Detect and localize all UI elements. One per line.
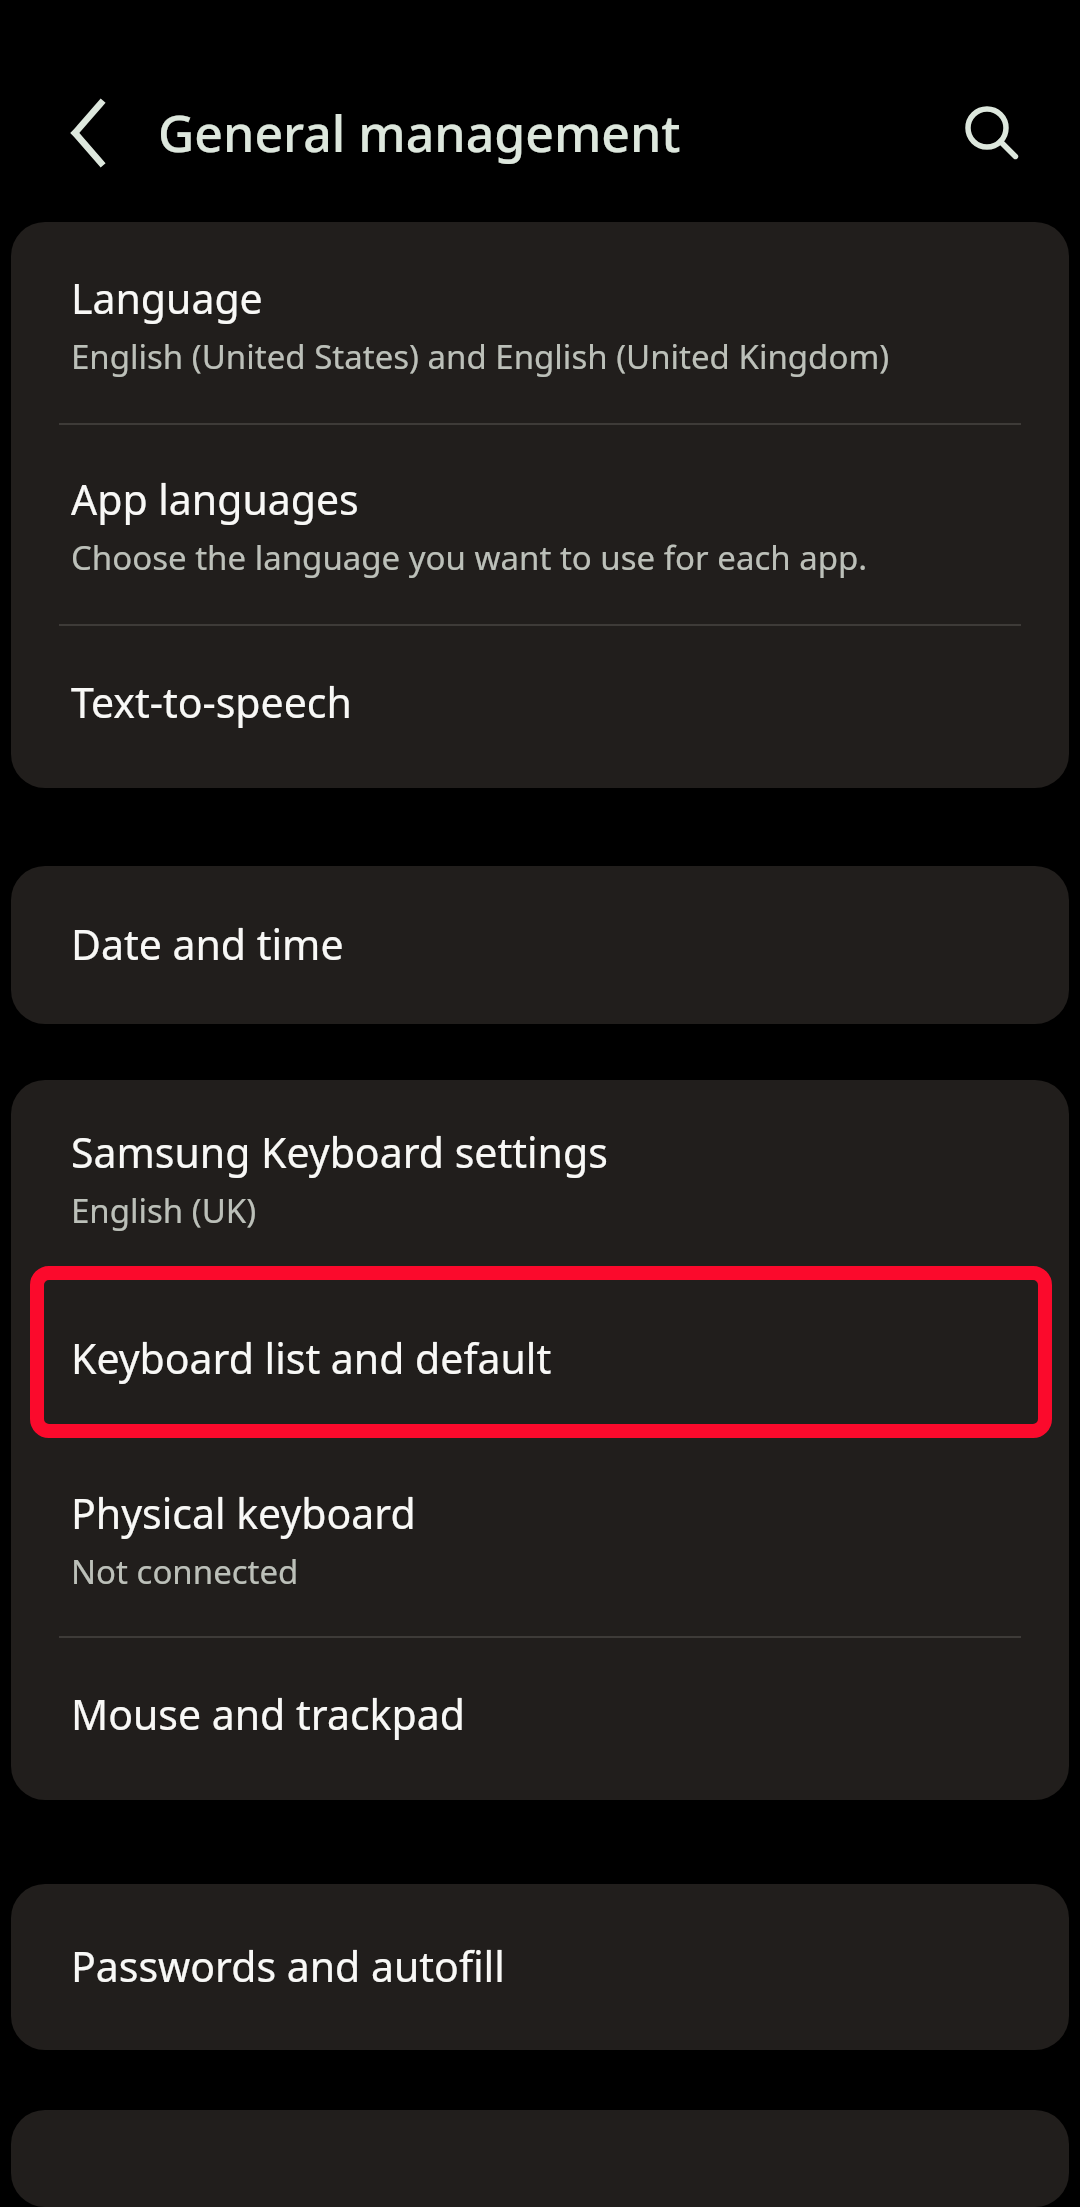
button[interactable]: Samsung Keyboard settings <box>11 1080 1069 1273</box>
button[interactable]: App languages <box>11 425 1069 624</box>
staticText: Date and time <box>71 916 344 972</box>
button[interactable]: Keyboard list and default <box>11 1273 1069 1443</box>
button[interactable]: Physical keyboard <box>11 1443 1069 1636</box>
staticText: Passwords and autofill <box>71 1938 505 1994</box>
staticText: Mouse and trackpad <box>71 1686 465 1742</box>
button[interactable]: Passwords and autofill <box>11 1884 1069 2050</box>
button[interactable]: Language <box>11 222 1069 423</box>
button[interactable]: Text-to-speech <box>11 626 1069 788</box>
staticText: English (UK) <box>71 1188 257 1233</box>
staticText: Samsung Keyboard settings <box>71 1124 608 1180</box>
button[interactable]: Back <box>40 85 136 181</box>
staticText: App languages <box>71 471 359 527</box>
staticText: Language <box>71 270 263 326</box>
button[interactable]: Mouse and trackpad <box>11 1638 1069 1800</box>
staticText: Keyboard list and default <box>71 1330 552 1386</box>
staticText: Choose the language you want to use for … <box>71 535 868 580</box>
staticText: Not connected <box>71 1549 299 1594</box>
button[interactable]: Reset <box>11 2110 1069 2207</box>
staticText: English (United States) and English (Uni… <box>71 334 890 379</box>
button[interactable]: Search <box>942 85 1038 181</box>
staticText: General management <box>158 99 681 167</box>
button[interactable]: Date and time <box>11 866 1069 1024</box>
staticText: Physical keyboard <box>71 1485 416 1541</box>
staticText: Text-to-speech <box>71 674 352 730</box>
